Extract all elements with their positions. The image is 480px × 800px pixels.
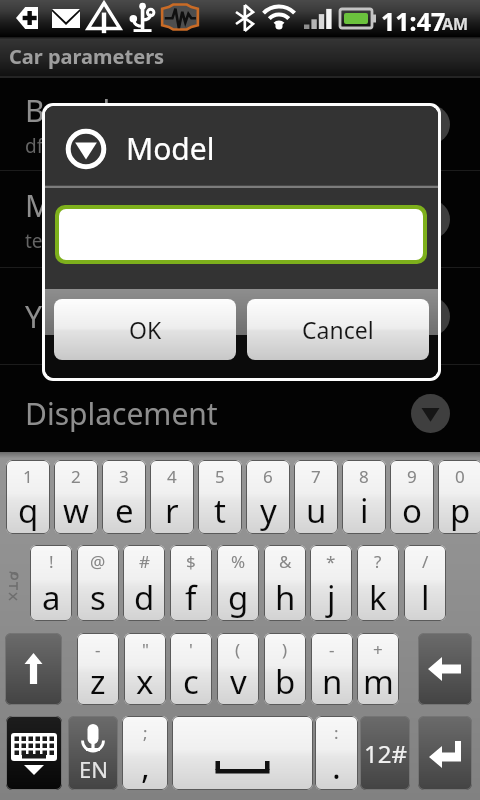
button[interactable]: - — [77, 633, 119, 705]
staticText: ' — [189, 638, 193, 661]
button[interactable]: Shift — [5, 633, 62, 705]
button[interactable]: # — [123, 545, 165, 621]
staticText: + — [373, 638, 383, 661]
button[interactable]: Open Year list — [411, 297, 450, 336]
staticText: $ — [186, 550, 196, 573]
button[interactable]: % — [217, 545, 259, 621]
staticText: x — [136, 659, 154, 704]
staticText: ? — [374, 550, 382, 573]
button[interactable]: ) — [264, 633, 306, 705]
staticText: d — [134, 575, 155, 620]
staticText: 3 — [119, 465, 129, 488]
button[interactable]: Backspace — [418, 633, 472, 705]
button[interactable]: " — [124, 633, 166, 705]
staticText: dfgdfg — [25, 133, 85, 159]
staticText: n — [322, 659, 343, 704]
button[interactable]: 5 — [198, 460, 242, 534]
staticText: q — [18, 488, 39, 533]
button[interactable]: OK — [54, 299, 236, 360]
staticText: s — [90, 575, 106, 620]
staticText: y — [260, 488, 277, 533]
staticText: ! — [49, 550, 54, 573]
button[interactable]: ? — [357, 545, 399, 621]
staticText: - — [329, 638, 335, 661]
staticText: Displacement — [25, 393, 218, 434]
staticText: Cancel — [302, 314, 374, 345]
button[interactable]: @ — [77, 545, 119, 621]
staticText: % — [231, 550, 246, 573]
staticText: u — [306, 488, 327, 533]
button[interactable]: ; — [122, 716, 168, 790]
button[interactable]: 6 — [246, 460, 290, 534]
button[interactable]: & — [264, 545, 306, 621]
staticText: p — [450, 488, 471, 533]
staticText: 11:47 — [381, 4, 446, 38]
staticText: Model — [126, 128, 215, 169]
staticText: o — [402, 488, 422, 533]
staticText: * — [326, 550, 336, 573]
staticText: h — [275, 575, 296, 620]
button[interactable]: Open Brand list — [411, 105, 450, 144]
staticText: 8 — [359, 465, 369, 488]
staticText: g — [228, 575, 249, 620]
button[interactable]: ! — [30, 545, 72, 621]
button[interactable]: Cancel — [247, 299, 429, 360]
button[interactable]: 1 — [6, 460, 50, 534]
staticText: b — [275, 659, 296, 704]
staticText: / — [422, 550, 429, 573]
button[interactable]: - — [311, 633, 353, 705]
button[interactable]: Hide keyboard — [6, 716, 62, 790]
staticText: j — [327, 575, 336, 620]
button[interactable]: Open Model list — [411, 200, 450, 239]
staticText: c — [183, 659, 199, 704]
staticText: ( — [235, 638, 241, 661]
button[interactable]: Open Displacement list — [411, 394, 450, 433]
staticText: f — [185, 575, 197, 620]
staticText: . — [332, 744, 341, 789]
button[interactable]: 7 — [294, 460, 338, 534]
button[interactable]: Enter — [418, 716, 472, 790]
button[interactable]: / — [404, 545, 446, 621]
staticText: 0 — [455, 465, 465, 488]
button[interactable]: Space — [172, 716, 313, 790]
button[interactable]: $ — [170, 545, 212, 621]
button[interactable]: Voice input, English — [68, 716, 118, 790]
button[interactable]: ( — [217, 633, 259, 705]
staticText: " — [142, 638, 149, 661]
staticText: Year — [25, 296, 87, 337]
button[interactable]: * — [310, 545, 352, 621]
staticText: Car parameters — [9, 43, 165, 70]
staticText: 2 — [71, 465, 81, 488]
button[interactable]: 3 — [102, 460, 146, 534]
button[interactable]: Model text field — [59, 209, 423, 260]
staticText: 4 — [167, 465, 177, 488]
button[interactable]: Symbols — [360, 716, 410, 790]
staticText: m — [363, 659, 394, 704]
staticText: ) — [282, 638, 288, 661]
staticText: a — [42, 575, 61, 620]
staticText: l — [421, 575, 430, 620]
staticText: 12# — [364, 737, 407, 770]
staticText: & — [279, 550, 292, 573]
staticText: : — [334, 721, 339, 744]
button[interactable]: 8 — [342, 460, 386, 534]
staticText: ; — [143, 721, 148, 744]
staticText: , — [141, 744, 150, 789]
button[interactable]: 0 — [438, 460, 480, 534]
staticText: AM — [442, 13, 469, 35]
button[interactable]: : — [315, 716, 358, 790]
button[interactable]: 2 — [54, 460, 98, 534]
staticText: - — [95, 638, 101, 661]
button[interactable]: 9 — [390, 460, 434, 534]
button[interactable]: + — [357, 633, 399, 705]
staticText: Brand — [25, 90, 111, 131]
staticText: t — [214, 488, 226, 533]
staticText: EN — [79, 754, 108, 784]
staticText: 1 — [23, 465, 33, 488]
staticText: # — [139, 550, 150, 573]
staticText: test — [25, 228, 59, 254]
staticText: r — [165, 488, 179, 533]
button[interactable]: 4 — [150, 460, 194, 534]
button[interactable]: ' — [170, 633, 212, 705]
staticText: k — [369, 575, 387, 620]
